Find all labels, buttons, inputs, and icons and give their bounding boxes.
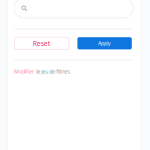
staticText: Reset bbox=[33, 39, 51, 48]
staticText: Modifier bbox=[14, 68, 34, 75]
staticText: Apply bbox=[98, 40, 111, 47]
button[interactable]: Modifier bbox=[14, 68, 70, 75]
staticText: le jeu de filtres bbox=[36, 68, 70, 75]
button[interactable]: Search bbox=[14, 0, 133, 18]
button[interactable]: Apply bbox=[77, 37, 132, 49]
button[interactable]: Reset bbox=[14, 37, 69, 49]
